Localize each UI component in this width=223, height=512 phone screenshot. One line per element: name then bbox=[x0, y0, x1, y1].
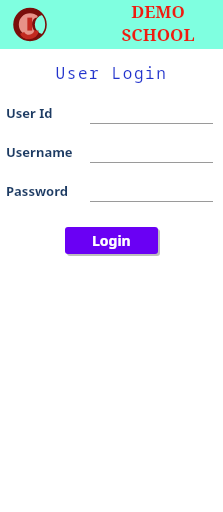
button[interactable]: Password bbox=[0, 180, 223, 202]
staticText: DEMO SCHOOL bbox=[96, 0, 220, 46]
button[interactable]: Username bbox=[0, 141, 223, 163]
staticText: Username bbox=[6, 143, 73, 161]
staticText: User Login bbox=[0, 62, 223, 84]
staticText: User Id bbox=[6, 104, 53, 122]
button[interactable]: User Id bbox=[0, 102, 223, 124]
button[interactable]: Login bbox=[65, 227, 158, 254]
staticText: Password bbox=[6, 182, 68, 200]
staticText: Login bbox=[92, 231, 131, 250]
